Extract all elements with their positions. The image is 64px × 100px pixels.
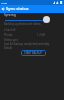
staticText: Syncing — [4, 13, 16, 17]
staticText: Last full backup completed yesterday — [4, 42, 50, 46]
staticText: Details — [4, 46, 13, 50]
staticText: 2 min left — [4, 28, 16, 32]
staticText: Videos sync — [4, 38, 19, 42]
button[interactable]: START BACKUP — [21, 50, 46, 56]
staticText: Sync status — [6, 6, 29, 12]
staticText: 1.2 GB — [37, 33, 45, 37]
staticText: START BACKUP — [24, 51, 43, 55]
button[interactable]: Navigate up — [0, 5, 6, 13]
staticText: Photos — [4, 33, 13, 37]
staticText: 12:30 — [1, 1, 8, 4]
staticText: Backing up photos and videos — [4, 22, 41, 26]
